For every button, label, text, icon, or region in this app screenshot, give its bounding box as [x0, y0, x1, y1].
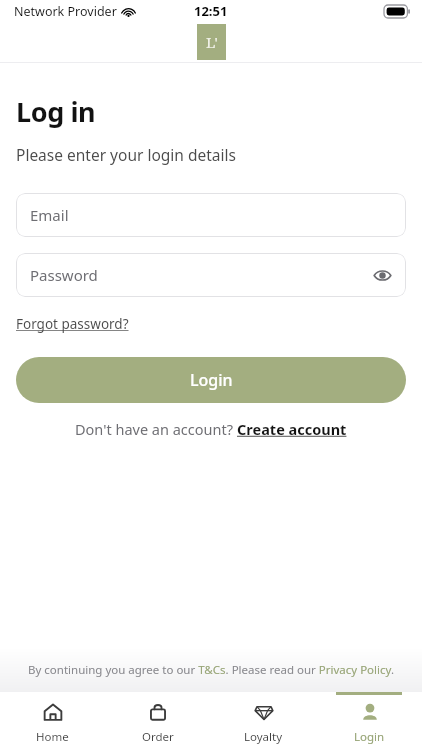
staticText: Log in [16, 93, 96, 130]
button[interactable]: Loyalty [210, 692, 316, 750]
staticText: Login [190, 369, 233, 391]
button[interactable]: Show password [371, 264, 393, 286]
staticText: Home [36, 729, 69, 745]
staticText: By continuing you agree to our T&Cs. Ple… [14, 662, 408, 678]
staticText: 12:51 [194, 2, 228, 20]
button[interactable]: Order [105, 692, 210, 750]
button[interactable]: Forgot password? [16, 315, 129, 333]
button[interactable]: Email [16, 193, 406, 237]
staticText: Email [30, 205, 69, 225]
staticText: Password [30, 265, 98, 285]
staticText: Login [354, 729, 385, 745]
button[interactable]: Create account [237, 419, 347, 439]
button[interactable]: By continuing you agree to our T&Cs. Ple… [14, 662, 408, 678]
button[interactable]: Login [316, 692, 422, 750]
staticText: Forgot password? [16, 315, 129, 333]
staticText: Please enter your login details [16, 144, 236, 165]
staticText: Network Provider [14, 3, 117, 20]
staticText: Order [142, 729, 174, 745]
button[interactable]: Home [0, 692, 105, 750]
staticText: L' [206, 32, 218, 52]
button[interactable]: Login [16, 357, 406, 403]
button[interactable]: Logo [197, 24, 226, 60]
staticText: Loyalty [244, 729, 283, 745]
button[interactable]: Password [16, 253, 406, 297]
staticText: Don't have an account? [75, 419, 237, 439]
staticText: Create account [237, 419, 347, 439]
